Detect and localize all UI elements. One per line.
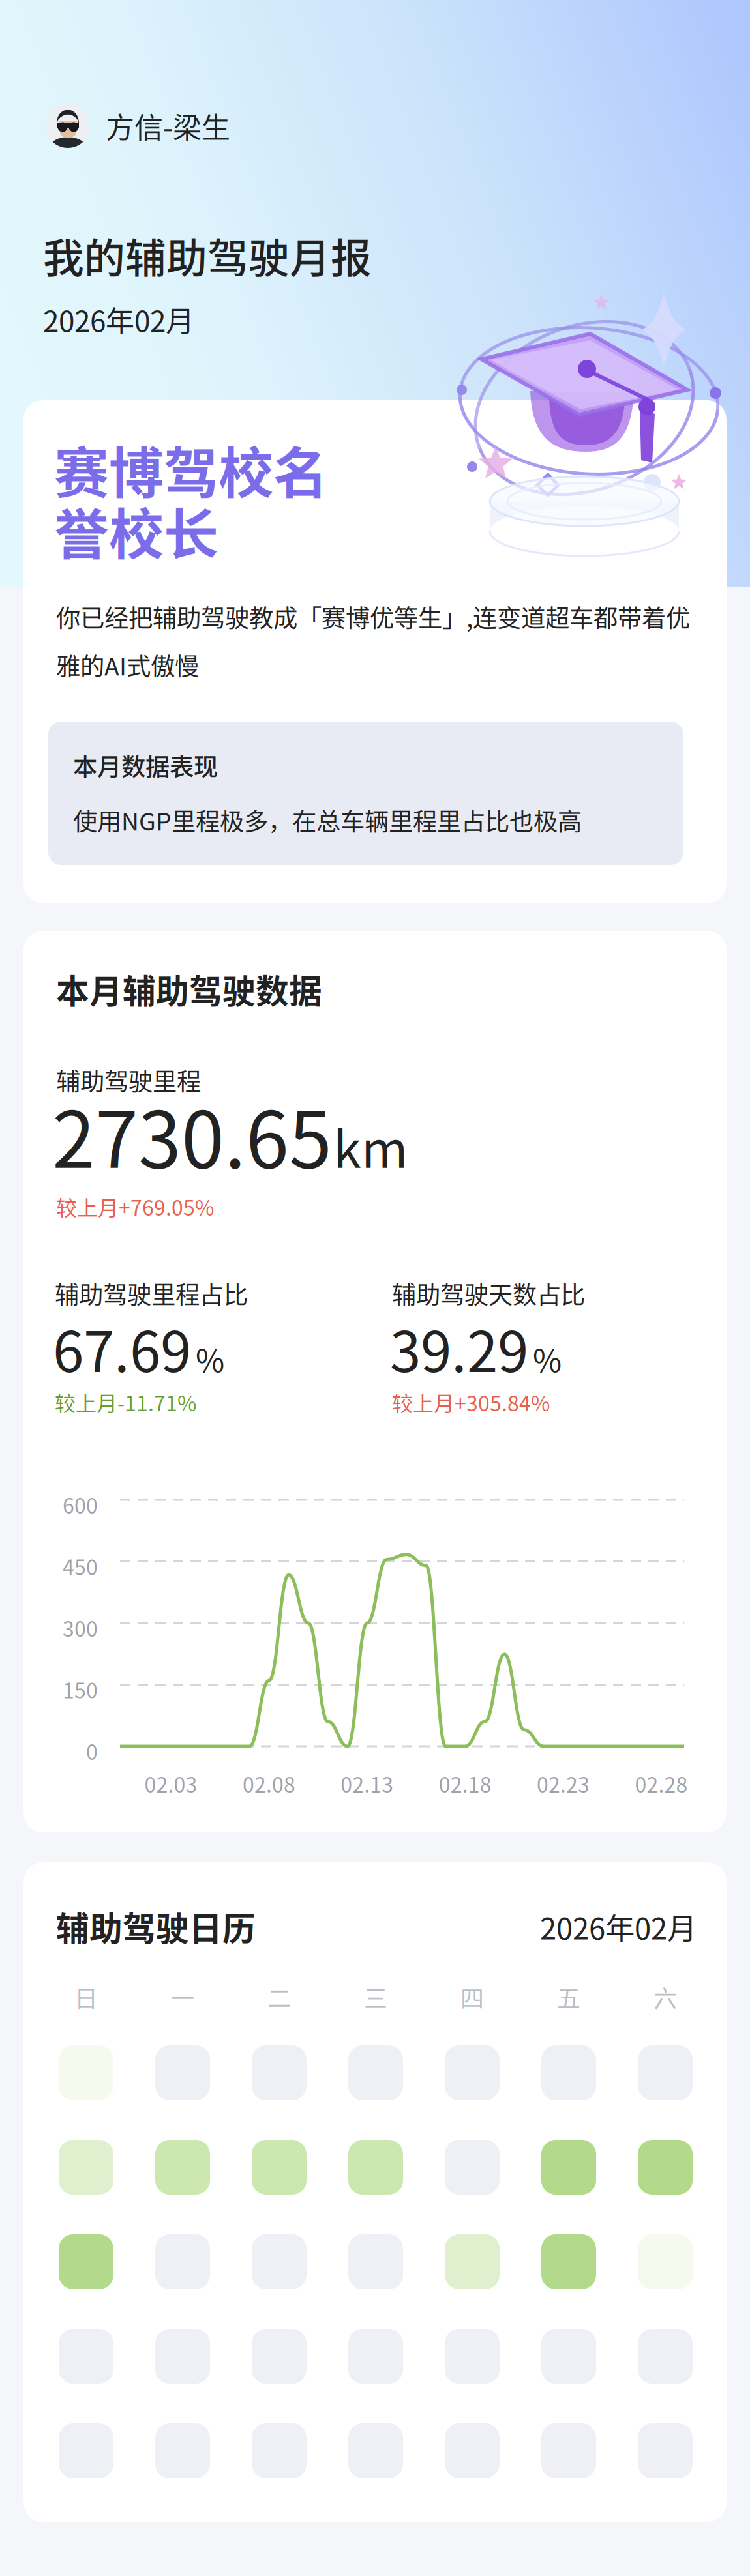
- staticText: 三: [364, 1980, 387, 2014]
- staticText: 雅的AI式傲慢: [56, 647, 199, 683]
- staticText: 辅助驾驶日历: [56, 1903, 256, 1951]
- staticText: 辅助驾驶里程: [56, 1062, 201, 1098]
- staticText: 使用NGP里程极多，在总车辆里程里占比也极高: [73, 802, 582, 838]
- staticText: 较上月-11.71%: [55, 1387, 196, 1417]
- staticText: 一: [171, 1980, 194, 2014]
- staticText: 67.69: [53, 1308, 191, 1388]
- staticText: 较上月+305.84%: [392, 1387, 550, 1417]
- staticText: 六: [653, 1980, 677, 2014]
- staticText: 誉校长: [54, 491, 218, 570]
- staticText: 赛博驾校名: [54, 430, 328, 509]
- staticText: 39.29: [390, 1308, 528, 1388]
- staticText: 本月辅助驾驶数据: [56, 965, 322, 1013]
- staticText: 02.03: [144, 1768, 197, 1799]
- staticText: 02.08: [243, 1768, 295, 1799]
- staticText: 较上月+769.05%: [56, 1192, 214, 1222]
- staticText: 300: [63, 1613, 98, 1643]
- staticText: 2026年02月: [540, 1905, 697, 1948]
- staticText: 02.13: [341, 1768, 393, 1799]
- staticText: 五: [557, 1980, 580, 2014]
- staticText: 02.28: [635, 1768, 688, 1799]
- staticText: 02.23: [537, 1768, 590, 1799]
- staticText: 二: [267, 1980, 291, 2014]
- staticText: 四: [460, 1980, 484, 2014]
- button[interactable]: 方信-梁生: [46, 104, 230, 148]
- staticText: 2730.65: [52, 1078, 332, 1190]
- staticText: 我的辅助驾驶月报: [43, 226, 372, 285]
- staticText: 150: [63, 1674, 98, 1704]
- staticText: %: [196, 1336, 224, 1381]
- staticText: 600: [63, 1489, 98, 1520]
- staticText: %: [533, 1336, 562, 1381]
- staticText: 你已经把辅助驾驶教成「赛博优等生」,连变道超车都带着优: [56, 599, 690, 634]
- staticText: 02.18: [439, 1768, 492, 1799]
- staticText: km: [333, 1109, 408, 1182]
- staticText: 0: [86, 1736, 98, 1766]
- staticText: 450: [63, 1551, 98, 1581]
- staticText: 日: [74, 1980, 98, 2014]
- staticText: 2026年02月: [43, 299, 194, 340]
- staticText: 辅助驾驶里程占比: [55, 1276, 248, 1311]
- staticText: 本月数据表现: [73, 748, 218, 783]
- staticText: 方信-梁生: [106, 105, 230, 147]
- staticText: 辅助驾驶天数占比: [392, 1276, 585, 1311]
